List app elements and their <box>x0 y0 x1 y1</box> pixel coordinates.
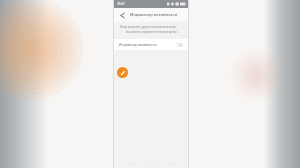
staticText: Когда включено, другие пользователи могу… <box>120 25 182 29</box>
button[interactable]: Индикатор активности <box>114 39 188 50</box>
staticText: Индикатор активности <box>130 12 178 18</box>
staticText: Индикатор активности <box>119 42 157 47</box>
staticText: 09:41 <box>117 2 125 6</box>
button[interactable]: Edit <box>117 67 128 78</box>
staticText: вы онлайн в недавнее последнее время <box>126 30 177 34</box>
button[interactable]: Back <box>118 11 127 20</box>
